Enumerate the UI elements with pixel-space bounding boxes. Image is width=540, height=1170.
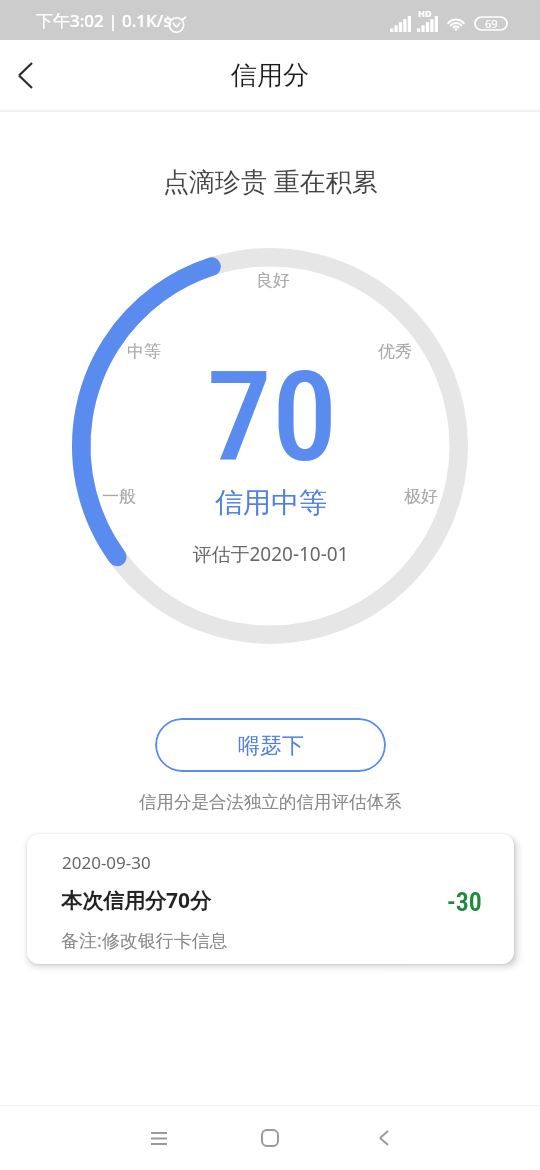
button[interactable]: 2020-09-30	[27, 834, 514, 964]
staticText: 良好	[256, 270, 290, 291]
staticText: 中等	[127, 341, 161, 362]
staticText: 评估于2020-10-01	[192, 541, 349, 567]
button[interactable]: Recent apps	[127, 1106, 191, 1170]
staticText: HD	[418, 7, 432, 19]
staticText: 优秀	[378, 341, 412, 362]
staticText: -30	[447, 887, 482, 917]
button[interactable]: Back	[352, 1106, 416, 1170]
staticText: 70	[207, 345, 337, 490]
staticText: 下午3:02 | 0.1K/s	[36, 9, 172, 32]
staticText: 嘚瑟下	[238, 732, 304, 760]
staticText: 备注:修改银行卡信息	[61, 928, 228, 953]
staticText: 一般	[102, 486, 136, 507]
button[interactable]: Home	[238, 1106, 302, 1170]
staticText: 69	[485, 16, 498, 31]
staticText: 点滴珍贵 重在积累	[163, 163, 378, 199]
staticText: 信用中等	[215, 485, 327, 520]
staticText: 信用分是合法独立的信用评估体系	[139, 791, 402, 813]
staticText: 信用分	[231, 59, 309, 92]
button[interactable]: 嘚瑟下	[155, 718, 386, 772]
staticText: 极好	[404, 486, 438, 507]
staticText: 本次信用分70分	[61, 886, 212, 915]
button[interactable]: Back	[0, 43, 50, 107]
staticText: 2020-09-30	[62, 851, 151, 874]
